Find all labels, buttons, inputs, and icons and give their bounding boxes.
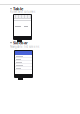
staticText: Sidebar: [13, 40, 28, 45]
staticText: Rows and columns: [10, 10, 35, 13]
staticText: Navigable list screens: [10, 45, 39, 48]
staticText: Table: [13, 6, 23, 11]
